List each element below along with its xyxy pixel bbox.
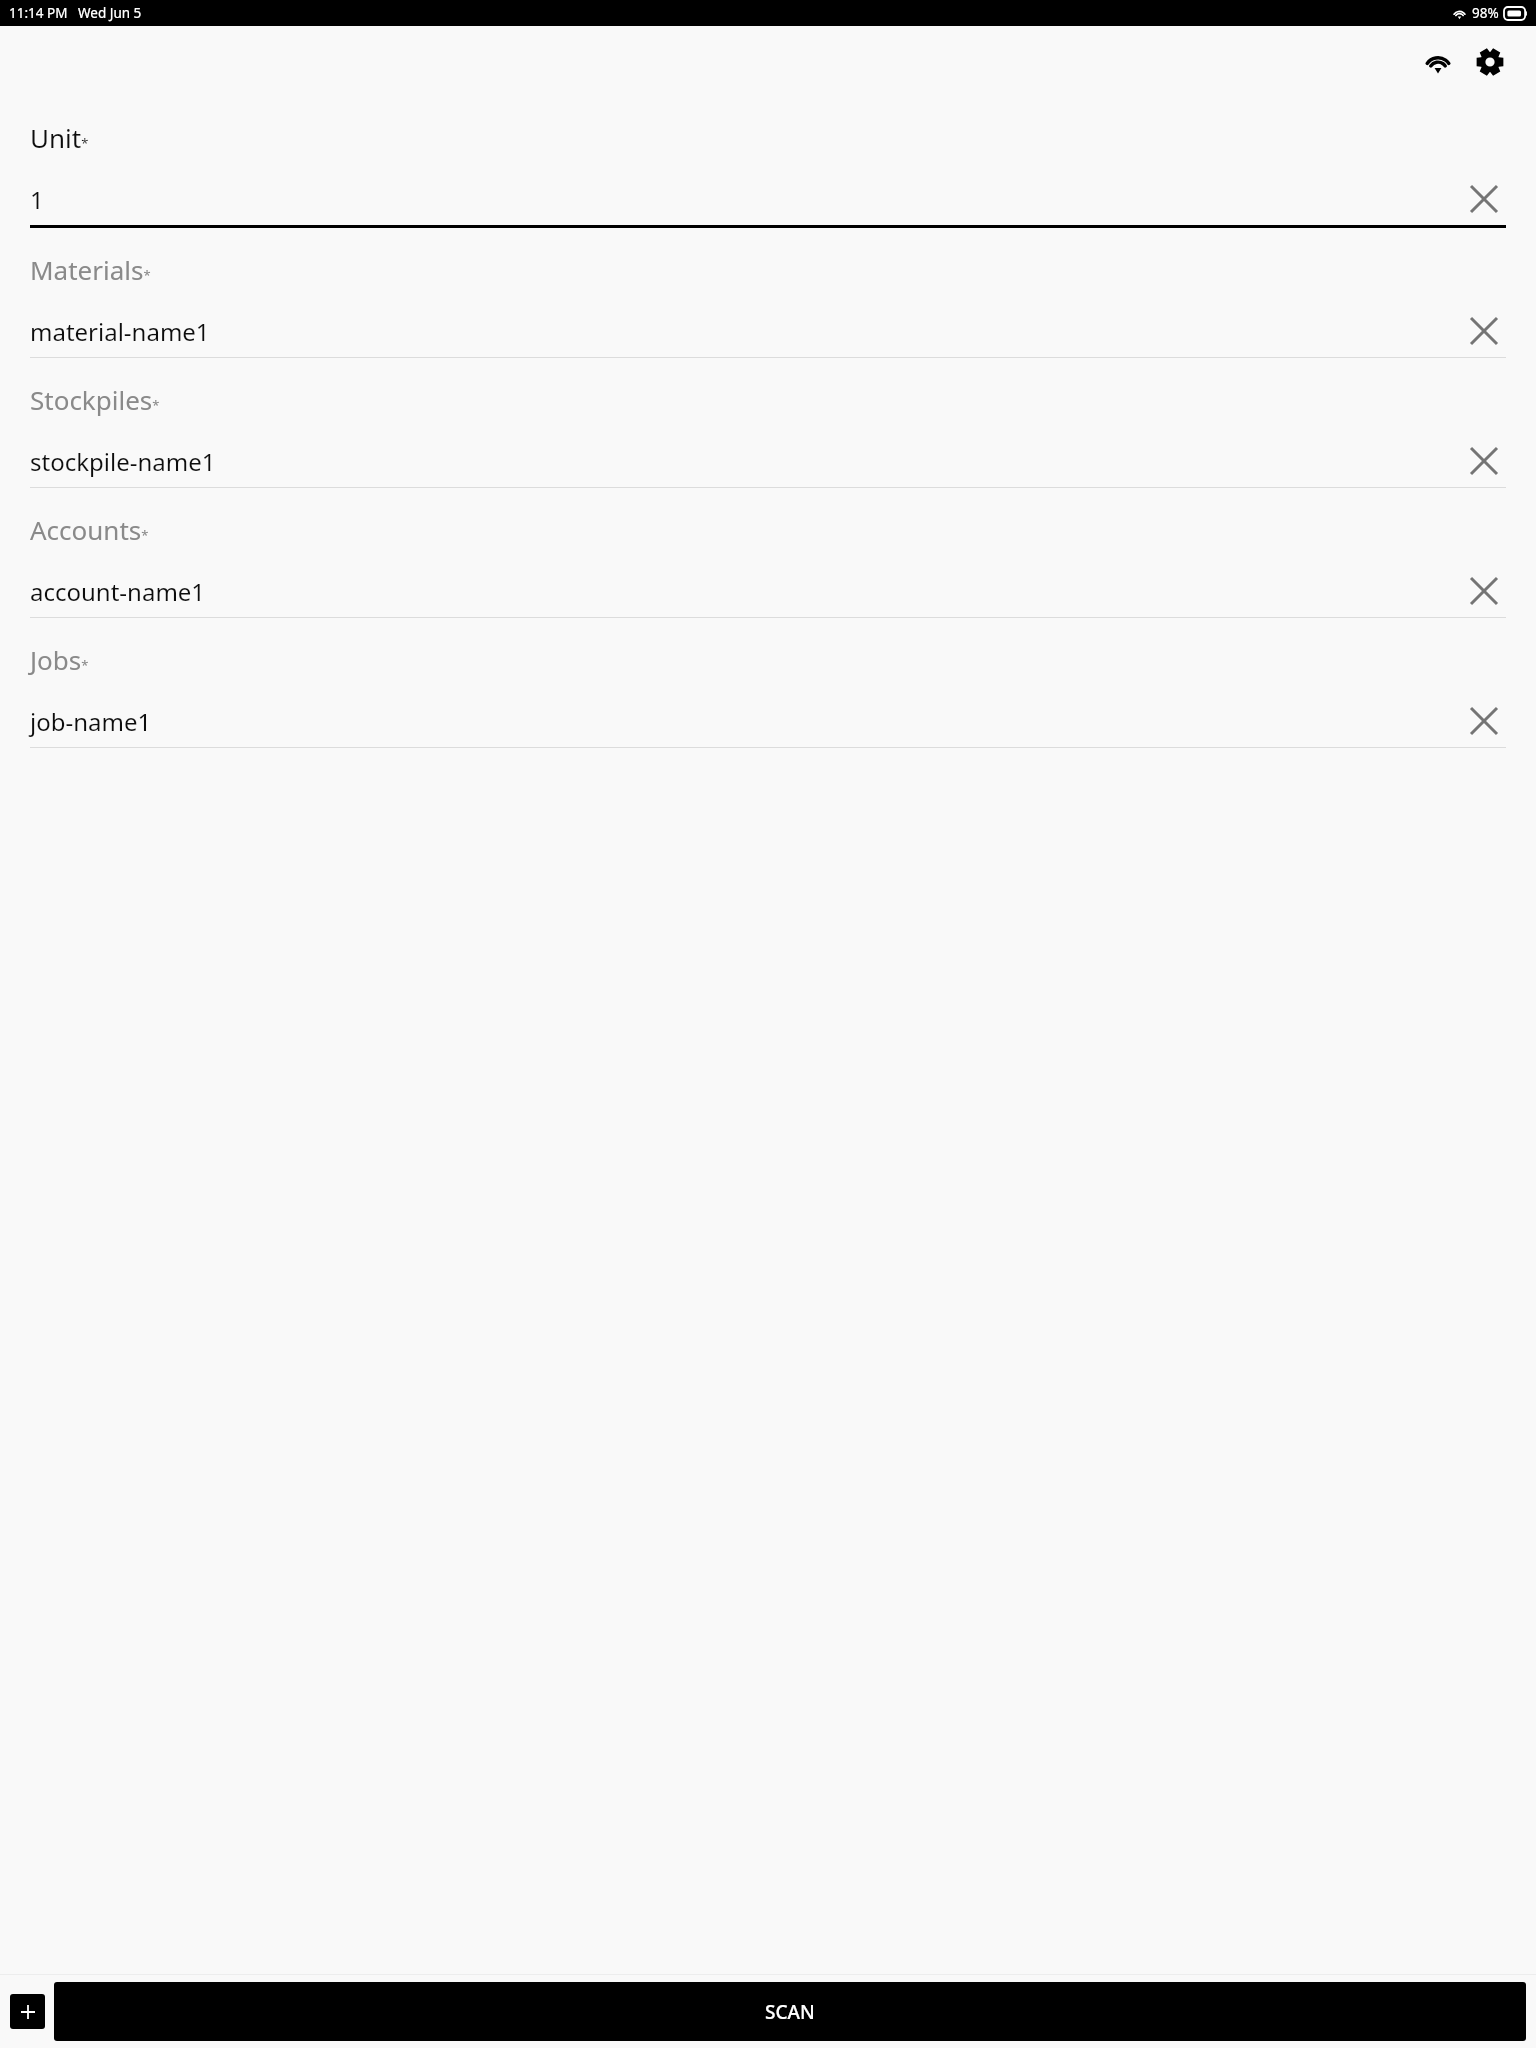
button[interactable]: SCAN [54,1982,1526,2041]
button[interactable]: Clear Materials [1462,309,1506,353]
button[interactable]: Clear Unit [1462,177,1506,221]
button[interactable]: Clear Jobs [1462,699,1506,743]
button[interactable]: Materials* [30,252,1506,358]
staticText: stockpile-name1 [30,445,1462,478]
staticText: Materials* [30,252,151,287]
staticText: 98% [1472,4,1499,22]
staticText: Wed Jun 5 [78,4,142,22]
button[interactable]: Accounts* [30,512,1506,618]
staticText: material-name1 [30,315,1462,348]
button[interactable]: Unit* [30,120,1506,228]
staticText: Unit* [30,120,89,155]
button[interactable]: Network status [1414,38,1462,86]
button[interactable]: Add [10,1994,45,2029]
staticText: Accounts* [30,512,149,547]
staticText: job-name1 [30,705,1462,738]
button[interactable]: Jobs* [30,642,1506,748]
button[interactable]: Clear Accounts [1462,569,1506,613]
staticText: SCAN [765,1999,815,2025]
staticText: 1 [30,183,1462,216]
staticText: account-name1 [30,575,1462,608]
button[interactable]: Clear Stockpiles [1462,439,1506,483]
button[interactable]: Stockpiles* [30,382,1506,488]
button[interactable]: Settings [1466,38,1514,86]
staticText: Stockpiles* [30,382,160,417]
staticText: Jobs* [30,642,89,677]
staticText: 11:14 PM [9,4,68,22]
